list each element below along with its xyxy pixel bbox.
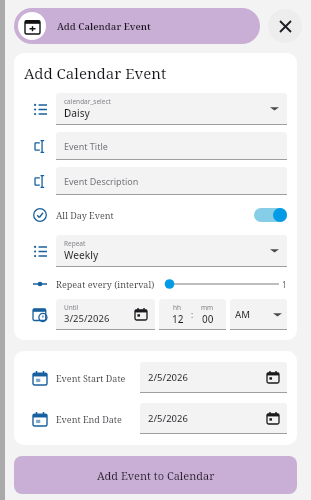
staticText: 2/5/2026 — [148, 412, 188, 425]
staticText: mm — [201, 303, 214, 312]
button[interactable]: AM — [230, 299, 287, 329]
staticText: 12 — [172, 312, 184, 326]
staticText: Add Calendar Event — [24, 63, 167, 83]
staticText: Weekly — [64, 248, 99, 262]
button[interactable]: Event End Date — [24, 403, 287, 434]
button[interactable]: calendar_select — [56, 93, 287, 124]
button[interactable]: hh — [159, 299, 226, 329]
button[interactable]: All Day Event — [24, 201, 287, 229]
button[interactable]: Until — [56, 299, 155, 329]
staticText: Event Start Date — [56, 372, 126, 384]
staticText: hh — [173, 303, 182, 312]
button[interactable]: Event Description — [56, 167, 287, 194]
staticText: Event Title — [64, 140, 108, 152]
staticText: 00 — [202, 312, 214, 326]
button[interactable]: Close — [268, 9, 302, 43]
staticText: Add Calendar Event — [57, 20, 151, 33]
button[interactable]: Repeat — [56, 235, 287, 266]
button[interactable]: Event Title — [56, 132, 287, 159]
staticText: 1 — [282, 279, 287, 290]
staticText: Daisy — [64, 106, 90, 120]
button[interactable]: Repeat every (interval) — [24, 275, 287, 293]
staticText: : — [191, 309, 194, 320]
staticText: AM — [235, 308, 250, 321]
staticText: 3/25/2026 — [64, 312, 110, 325]
staticText: Until — [64, 303, 79, 312]
staticText: Event End Date — [56, 413, 122, 425]
staticText: calendar_select — [64, 97, 111, 106]
button[interactable]: 2/5/2026 — [140, 403, 287, 433]
staticText: Event Description — [64, 175, 139, 187]
staticText: Add Event to Calendar — [97, 468, 215, 483]
staticText: 2/5/2026 — [148, 371, 188, 384]
button[interactable]: Add Calendar Event — [14, 8, 260, 44]
button[interactable]: 2/5/2026 — [140, 362, 287, 392]
button[interactable]: Event Start Date — [24, 362, 287, 393]
staticText: Repeat every (interval) — [56, 278, 155, 290]
staticText: All Day Event — [56, 209, 114, 221]
staticText: Repeat — [64, 239, 86, 248]
button[interactable]: Add Event to Calendar — [14, 456, 297, 494]
